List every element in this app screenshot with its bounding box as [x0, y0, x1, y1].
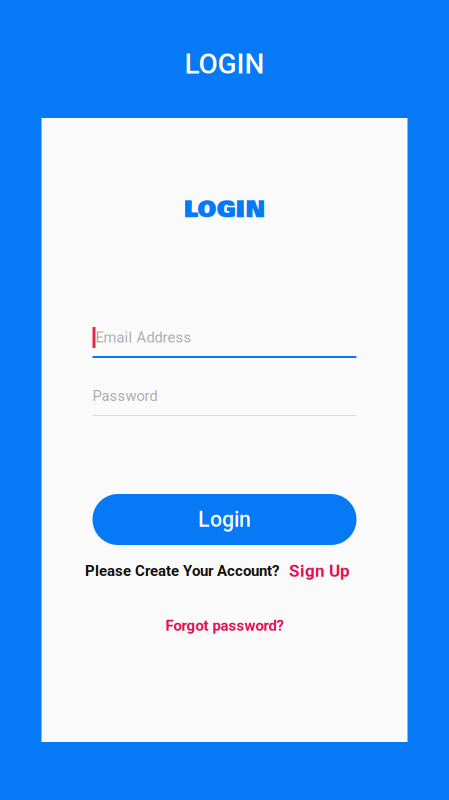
staticText: Sign Up: [289, 561, 350, 581]
staticText: LOGIN: [183, 191, 265, 228]
staticText: LOGIN: [184, 48, 264, 80]
button[interactable]: Forgot password?: [165, 617, 283, 634]
staticText: Password: [92, 387, 157, 405]
staticText: Please Create Your Account?: [85, 562, 279, 580]
staticText: Login: [198, 507, 251, 532]
button[interactable]: Sign Up: [289, 561, 350, 581]
staticText: Email Address: [95, 329, 191, 346]
button[interactable]: Login: [92, 494, 356, 545]
staticText: Forgot password?: [165, 617, 283, 634]
